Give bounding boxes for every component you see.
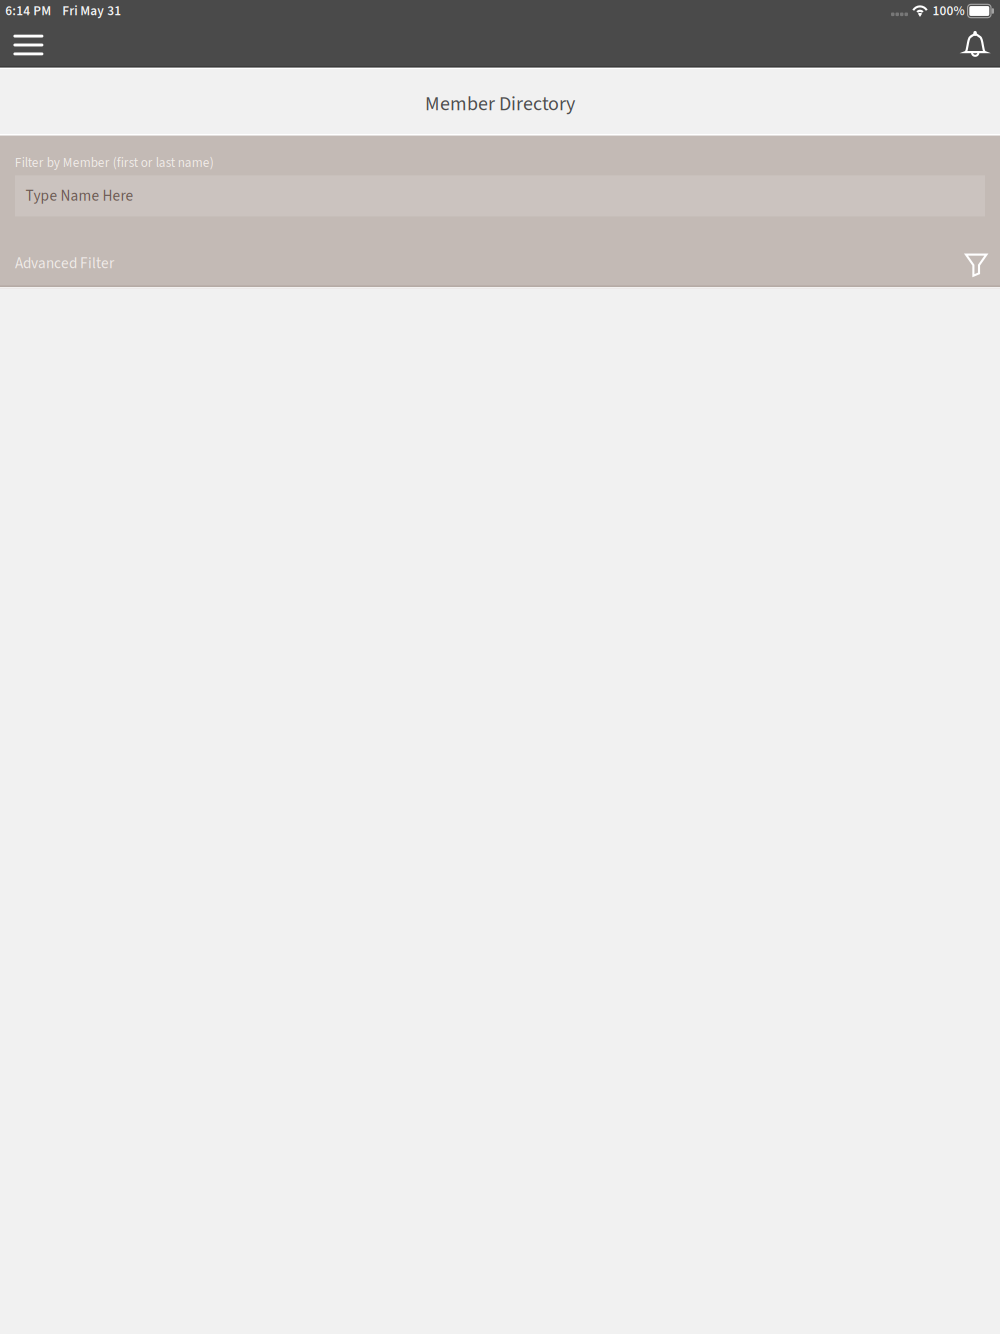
staticText: 100% bbox=[933, 1, 965, 20]
staticText: Filter by Member (first or last name) bbox=[15, 154, 214, 172]
button[interactable]: Menu bbox=[0, 22, 57, 69]
button[interactable]: Advanced Filter bbox=[0, 247, 1000, 279]
button[interactable]: Notifications bbox=[942, 22, 1000, 69]
staticText: Advanced Filter bbox=[15, 253, 114, 274]
staticText: 6:14 PM bbox=[5, 1, 51, 20]
staticText: Type Name Here bbox=[25, 185, 133, 207]
button[interactable]: Type Name Here bbox=[15, 175, 985, 216]
staticText: Fri May 31 bbox=[62, 1, 121, 20]
staticText: Member Directory bbox=[425, 90, 575, 118]
